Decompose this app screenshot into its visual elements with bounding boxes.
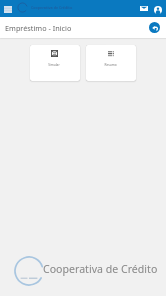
button[interactable]: Resumo xyxy=(86,45,136,81)
staticText: Empréstimo - Inicio xyxy=(5,23,72,33)
button[interactable]: Simular xyxy=(30,45,80,81)
button[interactable]: Menu xyxy=(1,3,14,16)
staticText: Resumo xyxy=(104,63,117,67)
button[interactable]: Voltar xyxy=(149,22,160,33)
staticText: Cooperativa de Crédito xyxy=(31,5,73,10)
staticText: Simular xyxy=(48,63,60,67)
button[interactable]: Conta xyxy=(151,3,164,16)
button[interactable]: Mensagens xyxy=(137,2,150,15)
staticText: Cooperativa de Crédito xyxy=(43,262,158,276)
